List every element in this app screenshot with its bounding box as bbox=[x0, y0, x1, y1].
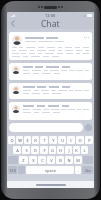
staticText: space bbox=[45, 168, 56, 173]
staticText: U bbox=[61, 138, 64, 143]
button[interactable]: F bbox=[40, 146, 48, 154]
button[interactable]: O bbox=[76, 136, 84, 144]
button[interactable]: K bbox=[73, 146, 80, 154]
staticText: Go bbox=[85, 168, 91, 173]
button[interactable]: . bbox=[75, 166, 81, 174]
button[interactable]: Q bbox=[8, 136, 15, 144]
button[interactable]: G bbox=[49, 146, 56, 154]
button[interactable]: 123 bbox=[8, 166, 17, 174]
staticText: D bbox=[34, 148, 37, 153]
staticText: C bbox=[41, 158, 44, 163]
staticText: T bbox=[43, 138, 46, 143]
staticText: F bbox=[43, 148, 46, 153]
button[interactable]: More options bbox=[84, 37, 89, 38]
button[interactable]: H bbox=[57, 146, 64, 154]
staticText: Z bbox=[22, 158, 25, 163]
button[interactable] bbox=[9, 63, 92, 80]
button[interactable]: X bbox=[29, 156, 37, 164]
staticText: N bbox=[67, 158, 71, 163]
button[interactable]: P bbox=[85, 136, 93, 144]
button[interactable]: J bbox=[65, 146, 72, 154]
button[interactable]: U bbox=[58, 136, 66, 144]
staticText: B bbox=[59, 158, 62, 163]
button[interactable]: L bbox=[81, 146, 88, 154]
staticText: G bbox=[51, 148, 54, 153]
staticText: V bbox=[50, 158, 53, 163]
staticText: . bbox=[77, 168, 79, 173]
button[interactable] bbox=[9, 83, 92, 99]
staticText: 12:00 bbox=[45, 13, 56, 18]
button[interactable] bbox=[9, 102, 92, 120]
staticText: J bbox=[68, 148, 70, 153]
button[interactable]: A bbox=[13, 146, 21, 154]
staticText: A bbox=[16, 148, 19, 153]
staticText: 123 bbox=[9, 168, 16, 173]
button[interactable]: D bbox=[31, 146, 39, 154]
button[interactable]: space bbox=[26, 166, 74, 174]
button[interactable]: E bbox=[24, 136, 31, 144]
button[interactable]: B bbox=[56, 156, 64, 164]
button[interactable]: W bbox=[16, 136, 23, 144]
button[interactable]: Go bbox=[82, 166, 93, 174]
staticText: H bbox=[59, 148, 62, 153]
button[interactable]: I bbox=[67, 136, 75, 144]
button[interactable]: Y bbox=[49, 136, 57, 144]
button[interactable] bbox=[9, 123, 83, 132]
button[interactable]: N bbox=[65, 156, 73, 164]
staticText: Q bbox=[10, 138, 14, 143]
staticText: X bbox=[32, 158, 35, 163]
button[interactable]: More options bbox=[9, 32, 92, 60]
staticText: R bbox=[34, 138, 37, 143]
staticText: L bbox=[83, 148, 86, 153]
staticText: W bbox=[18, 138, 22, 143]
button[interactable]: M bbox=[74, 156, 82, 164]
button[interactable]: T bbox=[40, 136, 48, 144]
button[interactable]: Back bbox=[7, 18, 18, 29]
button[interactable]: V bbox=[47, 156, 55, 164]
button[interactable]: R bbox=[32, 136, 39, 144]
button[interactable]: Send bbox=[85, 124, 92, 131]
staticText: P bbox=[88, 138, 91, 143]
staticText: E bbox=[26, 138, 29, 143]
staticText: Y bbox=[52, 138, 55, 143]
staticText: Chat bbox=[41, 18, 60, 29]
staticText: O bbox=[78, 138, 82, 143]
button[interactable]: Z bbox=[19, 156, 28, 164]
staticText: S bbox=[25, 148, 28, 153]
staticText: I bbox=[70, 138, 72, 143]
button[interactable]: C bbox=[38, 156, 46, 164]
button[interactable]: S bbox=[22, 146, 30, 154]
staticText: K bbox=[75, 148, 78, 153]
staticText: M bbox=[76, 158, 80, 163]
